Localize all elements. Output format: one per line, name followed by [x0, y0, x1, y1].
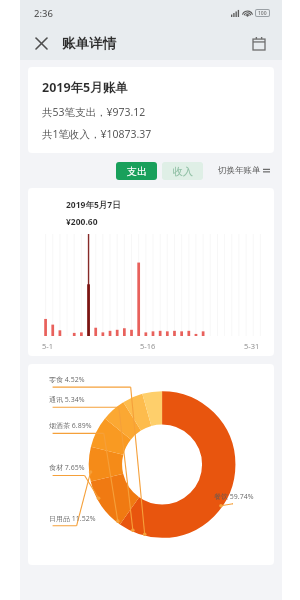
staticText: 零食 4.52%	[49, 375, 85, 385]
staticText: 食材 7.65%	[49, 463, 85, 473]
staticText: 2019年5月账单	[42, 79, 128, 96]
staticText: 5-16	[140, 341, 156, 351]
staticText: 5-31	[244, 341, 260, 351]
staticText: ¥200.60	[66, 216, 98, 228]
button[interactable]: Calendar	[246, 30, 272, 56]
button[interactable]: 支出	[116, 162, 157, 180]
staticText: 烟酒茶 6.89%	[49, 421, 92, 431]
staticText: 餐饮 59.74%	[214, 492, 254, 502]
staticText: 2:36	[34, 7, 53, 20]
button[interactable]: Close	[28, 30, 54, 56]
button[interactable]: 收入	[162, 162, 203, 180]
staticText: 通讯 5.34%	[49, 395, 85, 405]
staticText: 共53笔支出，¥973.12	[42, 105, 146, 119]
staticText: 收入	[173, 165, 193, 178]
staticText: 支出	[127, 165, 147, 178]
staticText: 日用品 11.52%	[49, 514, 96, 524]
staticText: 账单详情	[62, 35, 116, 52]
button[interactable]: 切换年账单	[218, 165, 274, 176]
staticText: 2019年5月7日	[66, 199, 121, 211]
staticText: 切换年账单	[218, 165, 261, 176]
staticText: 共1笔收入，¥10873.37	[42, 127, 152, 141]
staticText: 100	[258, 10, 267, 16]
staticText: 5-1	[42, 341, 53, 351]
